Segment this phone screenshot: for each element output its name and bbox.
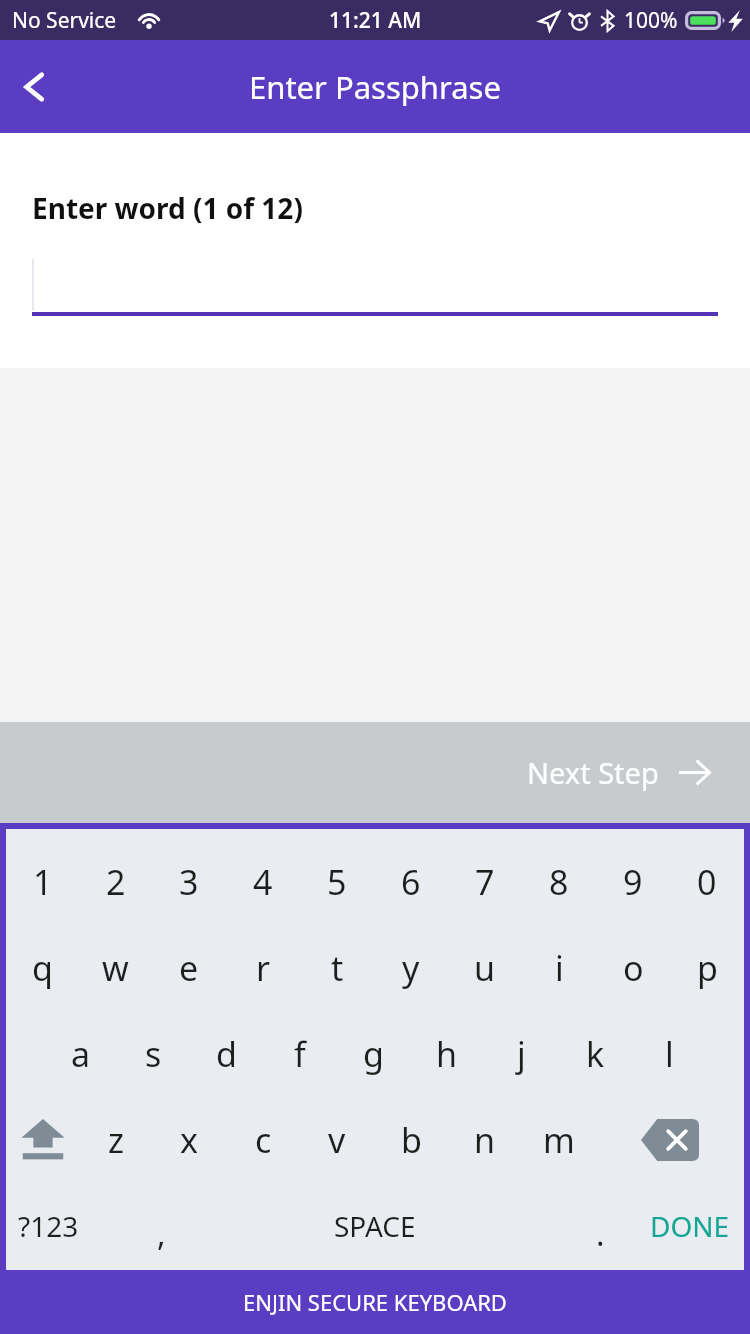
button[interactable]: m <box>522 1097 596 1183</box>
button[interactable]: x <box>152 1097 226 1183</box>
staticText: r <box>256 945 271 991</box>
button[interactable]: k <box>558 1011 632 1097</box>
button[interactable]: q <box>6 925 79 1011</box>
button[interactable]: w <box>79 925 152 1011</box>
button[interactable]: , <box>139 1212 183 1256</box>
staticText: h <box>436 1031 458 1077</box>
staticText: 0 <box>697 859 717 905</box>
staticText: 5 <box>327 859 347 905</box>
button[interactable]: 6 <box>374 839 448 925</box>
button[interactable]: r <box>226 925 300 1011</box>
button[interactable]: . <box>578 1212 622 1256</box>
button[interactable]: Backspace <box>596 1097 744 1183</box>
button[interactable]: SPACE <box>334 1207 416 1245</box>
staticText: . <box>596 1212 605 1256</box>
staticText: , <box>157 1212 166 1256</box>
staticText: p <box>697 945 718 991</box>
staticText: w <box>102 945 129 991</box>
staticText: l <box>665 1031 674 1077</box>
button[interactable]: y <box>374 925 448 1011</box>
button[interactable]: 0 <box>670 839 744 925</box>
button[interactable]: 7 <box>448 839 522 925</box>
staticText: 1 <box>33 859 53 905</box>
button[interactable]: ENJIN SECURE KEYBOARD <box>0 1270 750 1334</box>
staticText: q <box>32 945 53 991</box>
button[interactable]: g <box>336 1011 410 1097</box>
staticText: DONE <box>650 1207 730 1245</box>
staticText: n <box>474 1117 496 1163</box>
button[interactable]: ?123 <box>18 1207 79 1245</box>
button[interactable]: 1 <box>6 839 79 925</box>
button[interactable]: Back <box>0 53 68 121</box>
staticText: g <box>363 1031 384 1077</box>
button[interactable]: DONE <box>650 1207 730 1245</box>
staticText: c <box>255 1117 272 1163</box>
staticText: j <box>517 1031 526 1077</box>
staticText: 9 <box>623 859 643 905</box>
button[interactable]: i <box>522 925 596 1011</box>
staticText: 7 <box>475 859 495 905</box>
button[interactable]: v <box>300 1097 374 1183</box>
staticText: 2 <box>106 859 126 905</box>
staticText: a <box>71 1031 91 1077</box>
staticText: ENJIN SECURE KEYBOARD <box>243 1287 507 1317</box>
staticText: k <box>586 1031 605 1077</box>
button[interactable]: 9 <box>596 839 670 925</box>
button[interactable]: 5 <box>300 839 374 925</box>
staticText: t <box>331 945 344 991</box>
staticText: Enter word (1 of 12) <box>32 189 303 227</box>
button[interactable]: c <box>226 1097 300 1183</box>
staticText: b <box>401 1117 422 1163</box>
staticText: y <box>402 945 420 991</box>
button[interactable]: a <box>44 1011 117 1097</box>
staticText: m <box>543 1117 575 1163</box>
button[interactable]: n <box>448 1097 522 1183</box>
staticText: x <box>180 1117 198 1163</box>
button[interactable]: 8 <box>522 839 596 925</box>
button[interactable]: d <box>190 1011 263 1097</box>
button[interactable]: 4 <box>226 839 300 925</box>
button[interactable]: j <box>484 1011 558 1097</box>
staticText: o <box>623 945 644 991</box>
button[interactable]: h <box>410 1011 484 1097</box>
staticText: i <box>555 945 564 991</box>
button[interactable]: o <box>596 925 670 1011</box>
button[interactable]: z <box>79 1097 152 1183</box>
staticText: z <box>108 1117 124 1163</box>
staticText: 8 <box>549 859 569 905</box>
button[interactable]: p <box>670 925 744 1011</box>
button[interactable]: f <box>263 1011 336 1097</box>
button[interactable]: s <box>117 1011 190 1097</box>
staticText: 3 <box>179 859 199 905</box>
staticText: Enter Passphrase <box>249 66 501 108</box>
button[interactable]: 3 <box>152 839 226 925</box>
staticText: ?123 <box>18 1207 79 1245</box>
button[interactable]: u <box>448 925 522 1011</box>
button[interactable]: b <box>374 1097 448 1183</box>
staticText: d <box>216 1031 237 1077</box>
staticText: 4 <box>253 859 273 905</box>
button[interactable]: 2 <box>79 839 152 925</box>
button[interactable]: Next Step <box>0 722 750 823</box>
staticText: 11:21 AM <box>329 6 422 35</box>
button[interactable]: t <box>300 925 374 1011</box>
button[interactable]: l <box>632 1011 706 1097</box>
button[interactable] <box>32 259 718 316</box>
staticText: f <box>294 1031 306 1077</box>
staticText: Next Step <box>527 753 659 792</box>
button[interactable]: e <box>152 925 226 1011</box>
staticText: v <box>328 1117 346 1163</box>
staticText: 6 <box>401 859 421 905</box>
staticText: SPACE <box>334 1207 416 1245</box>
staticText: u <box>474 945 496 991</box>
staticText: No Service <box>12 6 117 35</box>
staticText: 100% <box>624 6 678 35</box>
staticText: s <box>145 1031 162 1077</box>
staticText: e <box>179 945 199 991</box>
button[interactable]: Shift <box>6 1097 79 1183</box>
